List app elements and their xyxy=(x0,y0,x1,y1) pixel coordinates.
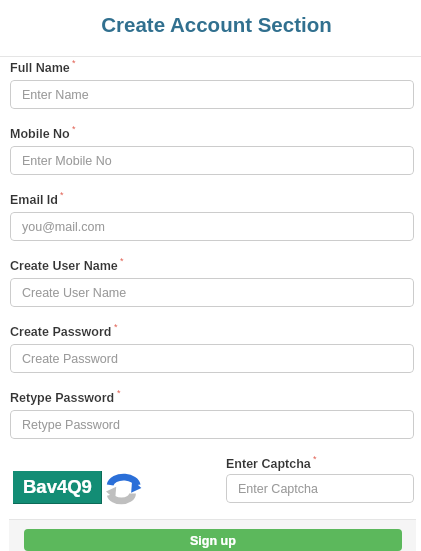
staticText: Create User Name xyxy=(10,259,118,273)
button[interactable]: Create Password xyxy=(10,344,414,373)
button[interactable]: Bav4Q9 xyxy=(13,471,101,503)
staticText: Enter Mobile No xyxy=(22,154,112,168)
button[interactable]: Create User Name xyxy=(10,278,414,307)
staticText: Full Name xyxy=(10,61,70,75)
button[interactable]: Sign up xyxy=(24,529,402,551)
staticText: * xyxy=(72,124,76,134)
button[interactable]: Retype Password xyxy=(10,410,414,439)
staticText: Retype Password xyxy=(22,418,120,432)
staticText: * xyxy=(114,322,118,332)
button[interactable]: you@mail.com xyxy=(10,212,414,241)
staticText: * xyxy=(60,190,64,200)
staticText: Retype Password xyxy=(10,391,115,405)
button[interactable]: Enter Mobile No xyxy=(10,146,414,175)
staticText: Create Account Section xyxy=(101,13,332,36)
button[interactable]: Enter Captcha xyxy=(226,474,414,503)
staticText: Bav4Q9 xyxy=(23,476,92,497)
staticText: Email Id xyxy=(10,193,58,207)
staticText: Create User Name xyxy=(22,286,127,300)
staticText: Create Password xyxy=(22,352,118,366)
staticText: Enter Name xyxy=(22,88,89,102)
staticText: * xyxy=(313,454,317,464)
button[interactable]: Refresh captcha xyxy=(106,470,140,504)
staticText: you@mail.com xyxy=(22,220,105,234)
button[interactable]: Enter Name xyxy=(10,80,414,109)
staticText: Sign up xyxy=(190,534,236,548)
staticText: Enter Captcha xyxy=(226,457,311,471)
staticText: * xyxy=(120,256,124,266)
staticText: * xyxy=(72,58,76,68)
staticText: Mobile No xyxy=(10,127,70,141)
staticText: Enter Captcha xyxy=(238,482,318,496)
staticText: * xyxy=(117,388,121,398)
staticText: Create Password xyxy=(10,325,112,339)
